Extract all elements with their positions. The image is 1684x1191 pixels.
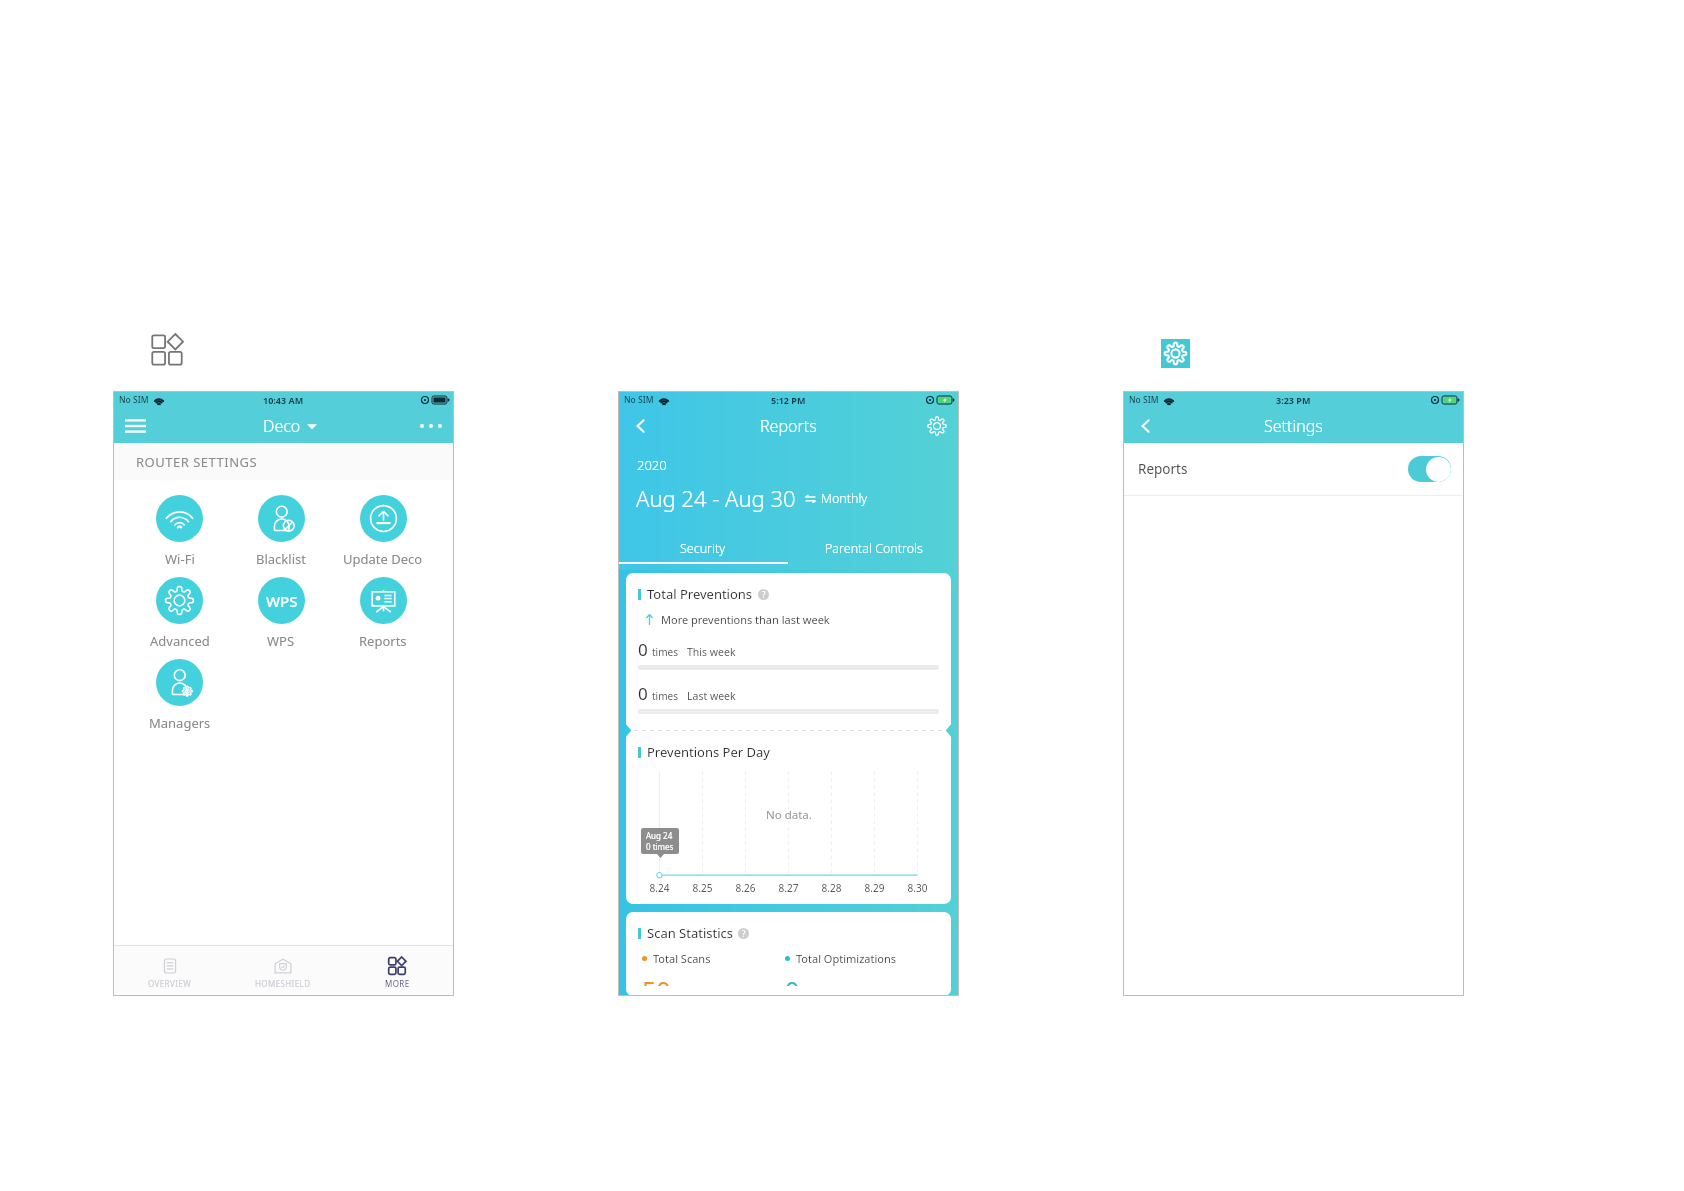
- staticText: 10:43 AM: [263, 394, 304, 406]
- staticText: Aug 24 - Aug 30: [636, 483, 796, 513]
- staticText: No SIM: [119, 394, 149, 406]
- button[interactable]: Blacklist: [230, 495, 332, 577]
- staticText: 5:12 PM: [771, 394, 806, 406]
- staticText: Wi-Fi: [165, 550, 195, 568]
- button[interactable]: Wi-Fi: [129, 495, 230, 577]
- staticText: Advanced: [150, 632, 210, 650]
- button[interactable]: Parental Controls: [788, 540, 959, 564]
- staticText: Aug 24: [646, 830, 673, 841]
- button[interactable]: Menu: [124, 414, 147, 438]
- button[interactable]: Monthly: [805, 490, 868, 507]
- staticText: No SIM: [1129, 394, 1159, 406]
- button[interactable]: Deco: [263, 415, 317, 437]
- button[interactable]: More options: [420, 414, 442, 438]
- staticText: WPS: [266, 591, 298, 611]
- staticText: ROUTER SETTINGS: [136, 453, 258, 471]
- staticText: times: [652, 689, 678, 703]
- staticText: Preventions Per Day: [647, 743, 770, 761]
- button[interactable]: MORE: [340, 949, 454, 996]
- staticText: Last week: [687, 689, 736, 703]
- button[interactable]: OVERVIEW: [113, 949, 226, 996]
- staticText: Reports: [1138, 460, 1408, 478]
- button[interactable]: Back: [1135, 415, 1157, 437]
- staticText: times: [652, 645, 678, 659]
- button[interactable]: Back: [630, 415, 652, 437]
- staticText: Total Scans: [653, 951, 711, 966]
- staticText: HOMESHIELD: [255, 978, 311, 989]
- staticText: Deco: [263, 415, 301, 437]
- staticText: No SIM: [624, 394, 654, 406]
- button[interactable]: WPS: [230, 577, 332, 659]
- staticText: Total Preventions: [647, 585, 753, 603]
- staticText: OVERVIEW: [148, 978, 191, 989]
- button[interactable]: Help: [758, 589, 769, 600]
- staticText: 8.26: [724, 881, 767, 895]
- staticText: WPS: [267, 632, 295, 650]
- button[interactable]: Reports: [332, 577, 434, 659]
- staticText: 8.28: [810, 881, 853, 895]
- staticText: Settings: [1264, 415, 1323, 437]
- button[interactable]: Settings: [1161, 339, 1190, 368]
- staticText: More preventions than last week: [661, 612, 830, 627]
- staticText: 2020: [637, 456, 667, 474]
- staticText: Scan Statistics: [647, 924, 733, 942]
- staticText: 0 times: [646, 841, 674, 852]
- staticText: ?: [762, 589, 766, 600]
- staticText: MORE: [385, 978, 410, 989]
- button[interactable]: Help: [738, 928, 749, 939]
- staticText: 3:23 PM: [1276, 394, 1311, 406]
- button[interactable]: Advanced: [129, 577, 230, 659]
- staticText: 8.24: [638, 881, 681, 895]
- staticText: Parental Controls: [825, 540, 923, 557]
- button[interactable]: Reports: [1123, 443, 1464, 495]
- staticText: No data.: [766, 807, 812, 823]
- button[interactable]: Reports toggle, on: [1408, 456, 1451, 482]
- staticText: Update Deco: [343, 550, 423, 568]
- staticText: 8.30: [896, 881, 939, 895]
- staticText: Security: [680, 540, 726, 557]
- staticText: 0: [638, 682, 648, 705]
- staticText: Reports: [760, 415, 817, 437]
- staticText: Blacklist: [256, 550, 306, 568]
- staticText: 50: [642, 973, 785, 986]
- staticText: 8.29: [853, 881, 896, 895]
- staticText: 8.27: [767, 881, 810, 895]
- button[interactable]: Update Deco: [332, 495, 434, 577]
- button[interactable]: Settings: [927, 416, 947, 436]
- button[interactable]: HOMESHIELD: [226, 949, 340, 996]
- button[interactable]: Security: [618, 540, 788, 564]
- staticText: 0: [785, 973, 939, 986]
- staticText: Total Optimizations: [796, 951, 897, 966]
- staticText: Reports: [359, 632, 407, 650]
- staticText: Managers: [149, 714, 211, 732]
- button[interactable]: More: [151, 334, 183, 366]
- staticText: 0: [638, 638, 648, 661]
- staticText: Monthly: [821, 490, 868, 507]
- staticText: This week: [687, 645, 736, 659]
- staticText: ?: [742, 928, 746, 939]
- staticText: 8.25: [681, 881, 724, 895]
- button[interactable]: Managers: [129, 659, 230, 741]
